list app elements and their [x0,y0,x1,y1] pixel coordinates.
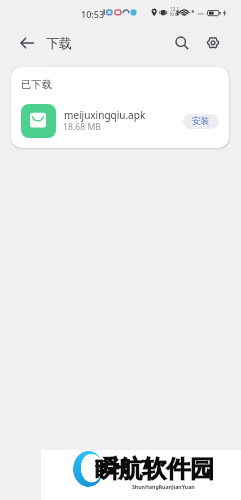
staticText: 瞬航软件园 [95,454,214,484]
staticText: 18.68 MB [63,121,101,133]
staticText: 已下载 [21,78,52,91]
staticText: 下载 [46,35,72,51]
staticText: 安装 [192,116,210,127]
staticText: 12.1 K/s [170,6,180,17]
staticText: ShunHangRuanJianYuan [132,483,195,490]
button[interactable]: Search [170,31,194,55]
button[interactable]: Back [15,31,39,55]
button[interactable]: meijuxingqiu.apk [11,104,229,138]
button[interactable]: 安装 [183,114,219,129]
staticText: meijuxingqiu.apk [64,108,146,122]
button[interactable]: Settings [201,31,225,55]
staticText: 10:53 [81,8,105,20]
